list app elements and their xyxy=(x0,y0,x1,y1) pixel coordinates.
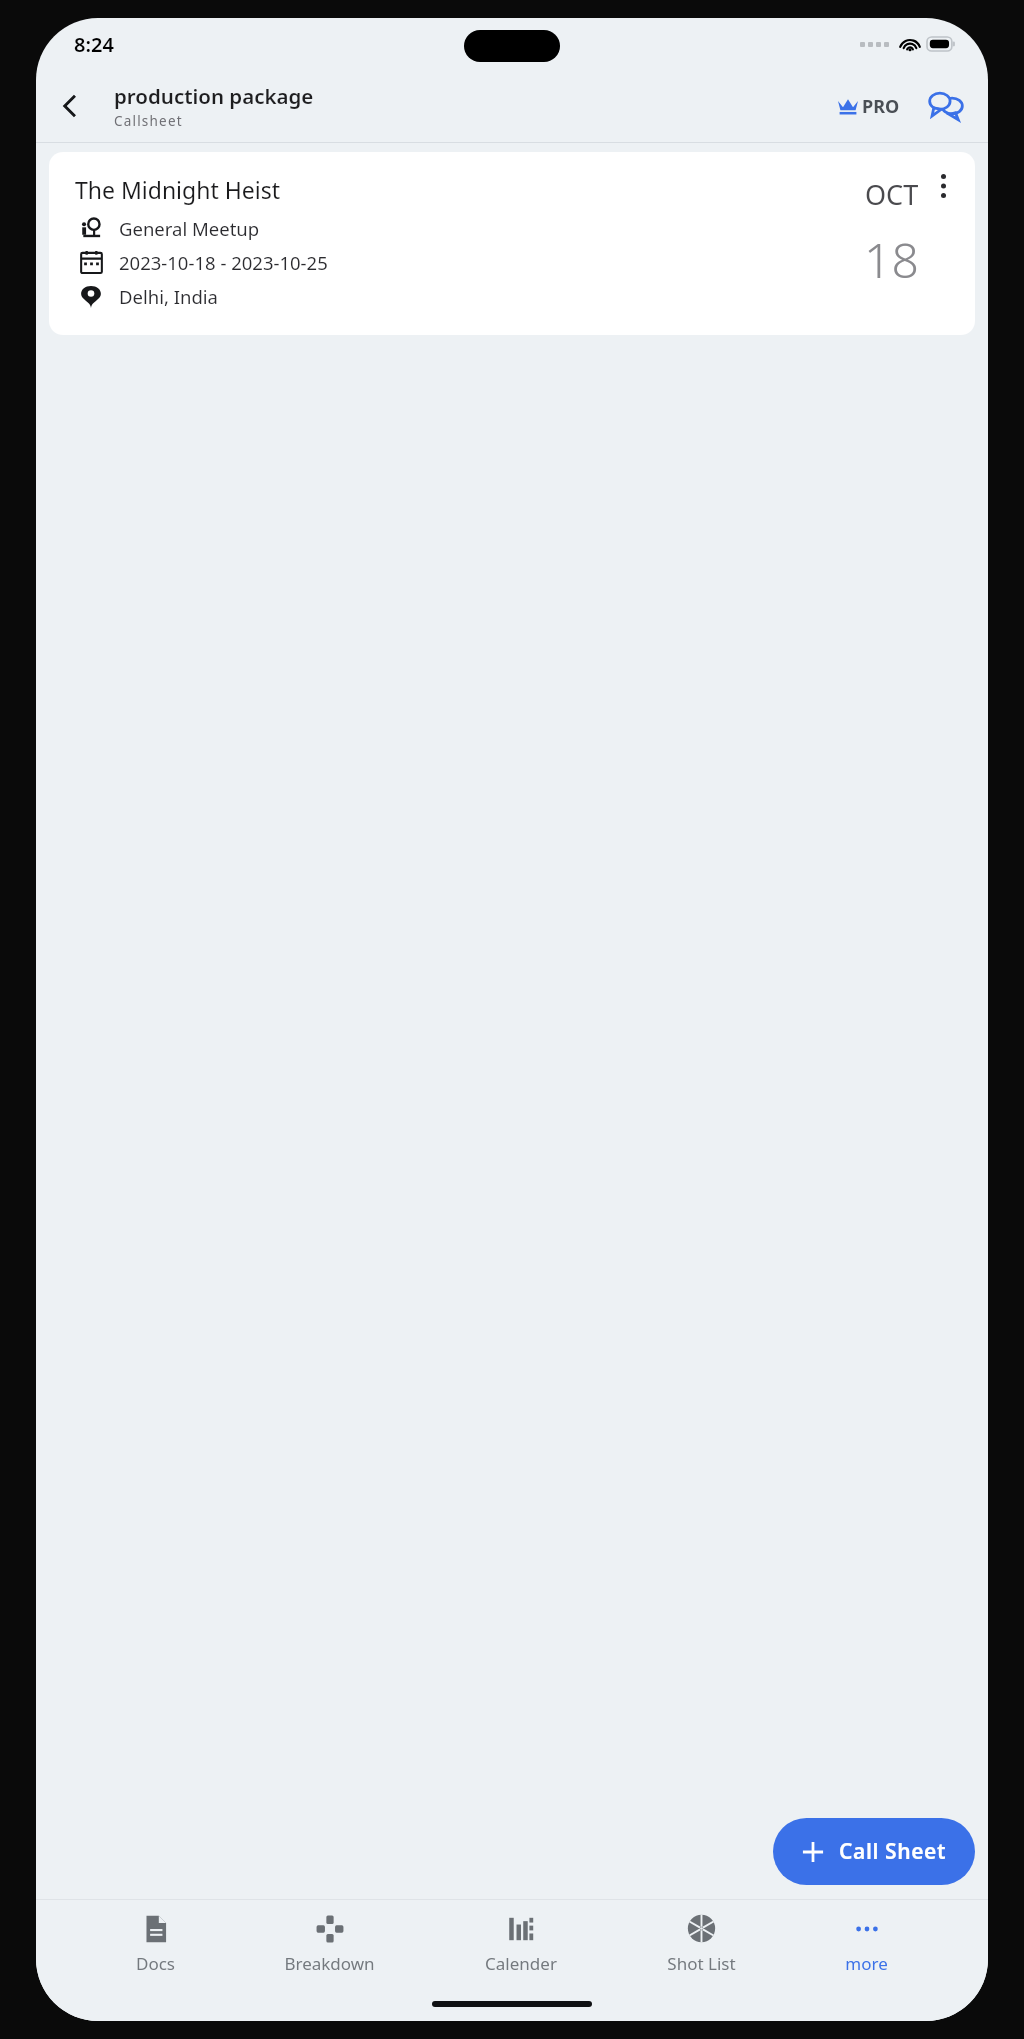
staticText: 2023-10-18 - 2023-10-25 xyxy=(119,250,328,275)
staticText: OCT xyxy=(865,176,919,213)
staticText: Breakdown xyxy=(284,1952,375,1975)
staticText: more xyxy=(845,1952,888,1975)
button[interactable]: Back xyxy=(46,82,94,130)
staticText: Docs xyxy=(136,1952,175,1975)
staticText: PRO xyxy=(862,94,900,119)
button[interactable]: Shot List xyxy=(657,1912,746,1977)
staticText: The Midnight Heist xyxy=(75,174,280,205)
button[interactable]: Calender xyxy=(475,1913,567,1977)
staticText: General Meetup xyxy=(119,216,260,241)
button[interactable]: Call Sheet xyxy=(773,1818,975,1885)
staticText: Calender xyxy=(485,1952,557,1975)
button[interactable]: Docs xyxy=(126,1913,185,1977)
staticText: Call Sheet xyxy=(839,1837,947,1866)
button[interactable]: Chat xyxy=(920,80,972,132)
button[interactable]: PRO xyxy=(836,88,902,125)
staticText: Callsheet xyxy=(114,112,183,130)
button[interactable]: Breakdown xyxy=(274,1913,385,1977)
button[interactable]: More options xyxy=(925,174,961,210)
button[interactable]: more xyxy=(835,1913,898,1977)
staticText: Delhi, India xyxy=(119,284,218,309)
staticText: 18 xyxy=(864,227,919,292)
staticText: production package xyxy=(114,82,314,110)
staticText: Shot List xyxy=(667,1952,736,1975)
staticText: 8:24 xyxy=(74,31,114,58)
button[interactable]: The Midnight Heist xyxy=(49,152,975,335)
